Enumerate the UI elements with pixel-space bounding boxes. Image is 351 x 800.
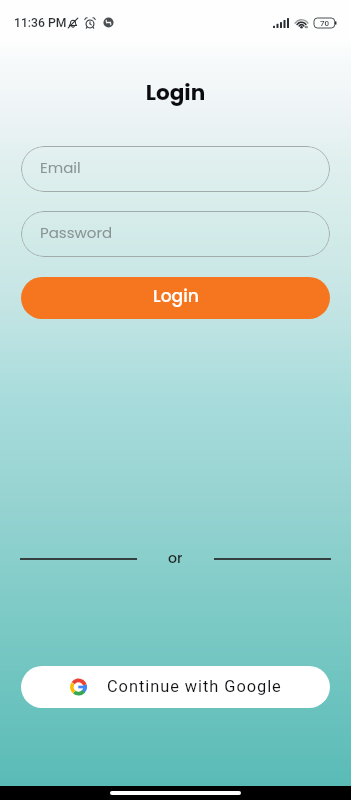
staticText: Password: [40, 222, 113, 243]
staticText: Login: [153, 284, 199, 308]
button[interactable]: Login: [21, 277, 330, 319]
button[interactable]: Email: [21, 146, 330, 192]
staticText: Email: [40, 157, 81, 178]
staticText: or: [168, 548, 183, 568]
staticText: Login: [0, 77, 351, 107]
button[interactable]: Password: [21, 211, 330, 257]
staticText: 11:36 PM: [14, 16, 67, 30]
button[interactable]: Continue with Google: [21, 666, 330, 708]
staticText: Continue with Google: [107, 677, 282, 696]
staticText: 70: [320, 19, 330, 28]
